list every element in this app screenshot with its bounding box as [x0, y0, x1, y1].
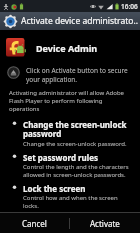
staticText: Control how and when the screen locks.	[23, 194, 132, 210]
other: App icon	[4, 15, 17, 28]
staticText: Activate device administrato..	[21, 15, 138, 27]
staticText: Click on Activate button to secure your …	[26, 66, 134, 84]
staticText: 16:06	[121, 2, 138, 11]
staticText: Device Admin	[36, 42, 98, 54]
staticText: Activate	[90, 218, 120, 229]
staticText: Lock the screen	[23, 183, 86, 194]
button[interactable]: Activate	[70, 213, 140, 233]
staticText: Set password rules	[23, 152, 98, 163]
staticText: Activating administrator will allow Adob…	[9, 89, 131, 113]
staticText: Change the screen-unlock password	[23, 119, 132, 140]
staticText: Cancel	[22, 218, 47, 229]
staticText: Change the screen-unlock password.	[23, 140, 127, 148]
button[interactable]: Cancel	[0, 213, 69, 233]
staticText: Control the length and the characters al…	[23, 163, 132, 179]
